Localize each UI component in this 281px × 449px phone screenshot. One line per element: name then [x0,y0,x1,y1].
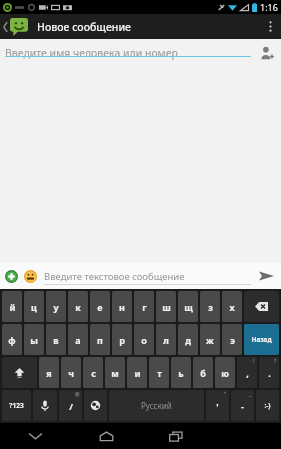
staticText: ш [162,301,171,313]
button[interactable]: :-) [256,390,279,421]
button[interactable]: г [134,291,154,322]
button[interactable]: Add contact [257,43,277,63]
staticText: 1:16 [260,1,278,13]
button[interactable]: е [90,291,110,322]
staticText: х [229,301,235,313]
staticText: ' [216,400,219,412]
staticText: ь [178,367,184,379]
button[interactable]: д [178,324,198,355]
button[interactable]: More options [259,14,281,39]
button[interactable]: а [68,324,88,355]
button[interactable]: Shift [2,357,37,388]
button[interactable]: Send [255,265,277,287]
button[interactable]: Введите имя человека или номер [5,46,251,60]
staticText: м [111,367,119,379]
button[interactable]: з [200,291,220,322]
staticText: у [53,301,59,313]
button[interactable]: Back [0,14,30,39]
staticText: г [142,301,147,313]
button[interactable]: х [222,291,242,322]
button[interactable]: Home [71,423,141,449]
staticText: Введите имя человека или номер [5,46,178,60]
staticText: в [53,334,59,346]
staticText: ч [68,367,74,379]
button[interactable]: Space [109,390,204,421]
staticText: к [75,301,81,313]
staticText: ж [206,334,214,346]
button[interactable]: л [156,324,176,355]
staticText: с [91,367,96,379]
button[interactable]: ш [156,291,176,322]
staticText: Новое сообщение [37,20,131,34]
staticText: :-) [264,401,271,410]
button[interactable]: " [206,390,229,421]
staticText: р [119,334,125,346]
staticText: ы [30,334,38,346]
button[interactable]: я [39,357,59,388]
button[interactable]: ю [215,357,235,388]
staticText: , [246,367,249,379]
button[interactable]: п [90,324,110,355]
button[interactable]: ы [24,324,44,355]
button[interactable]: к [68,291,88,322]
staticText: ф [8,334,16,346]
staticText: и [134,367,141,379]
staticText: _ [249,391,252,398]
staticText: щ [184,301,193,313]
button[interactable]: Voice input [33,390,57,421]
button[interactable]: в [46,324,66,355]
button[interactable]: _ [231,390,254,421]
staticText: - [241,400,244,412]
button[interactable]: э [222,324,242,355]
button[interactable]: ! [237,357,257,388]
button[interactable]: ч [61,357,81,388]
staticText: н [119,301,125,313]
staticText: Русский [141,400,172,411]
staticText: б [200,367,206,379]
staticText: " [224,391,227,398]
button[interactable]: Recent apps [141,423,211,449]
button[interactable]: н [112,291,132,322]
button[interactable]: т [149,357,169,388]
button[interactable]: м [105,357,125,388]
button[interactable]: й [2,291,22,322]
button[interactable]: ж [200,324,220,355]
staticText: ю [221,367,229,379]
button[interactable]: и [127,357,147,388]
button[interactable]: о [134,324,154,355]
button[interactable]: Backspace [244,291,279,322]
staticText: Назад [251,335,272,344]
staticText: @ [75,391,80,398]
button[interactable]: Назад [244,324,279,355]
staticText: й [9,301,16,313]
staticText: ! [253,358,255,365]
button[interactable]: щ [178,291,198,322]
staticText: з [208,301,213,313]
button[interactable]: б [193,357,213,388]
button[interactable]: Back [0,423,71,449]
staticText: е [97,301,103,313]
button[interactable]: с [83,357,103,388]
staticText: т [157,367,162,379]
button[interactable]: ц [24,291,44,322]
button[interactable]: у [46,291,66,322]
button[interactable]: Change language [84,390,107,421]
staticText: л [163,334,169,346]
staticText: п [97,334,103,346]
button[interactable]: р [112,324,132,355]
staticText: ц [31,301,37,313]
staticText: о [141,334,147,346]
button[interactable]: Insert emoji [22,268,38,284]
button[interactable]: ф [2,324,22,355]
staticText: э [230,334,235,346]
button[interactable]: Symbols [2,390,31,421]
button[interactable]: Введите текстовое сообщение [44,263,251,289]
staticText: я [46,367,52,379]
staticText: / [69,400,73,412]
button[interactable]: ь [171,357,191,388]
staticText: Введите текстовое сообщение [44,270,185,283]
staticText: а [75,334,81,346]
button[interactable]: Add attachment [3,268,19,284]
button[interactable]: ? [259,357,279,388]
button[interactable]: @ [59,390,82,421]
